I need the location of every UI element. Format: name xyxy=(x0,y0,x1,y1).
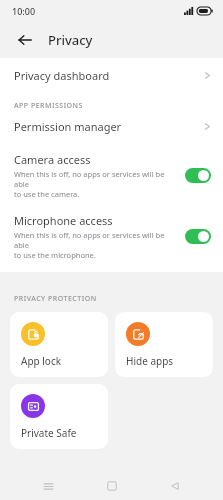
staticText: Hide apps xyxy=(126,354,174,368)
staticText: PRIVACY PROTECTION xyxy=(14,294,97,304)
button[interactable]: Show password xyxy=(0,487,223,500)
staticText: When this is off, no apps or services wi… xyxy=(14,169,179,199)
staticText: Permission manager xyxy=(14,119,204,134)
staticText: Privacy dashboard xyxy=(14,68,204,83)
button[interactable]: Recent apps xyxy=(33,472,63,500)
button[interactable]: Toggle xyxy=(185,229,211,244)
button[interactable]: Camera access xyxy=(0,144,223,205)
staticText: Privacy xyxy=(48,31,93,49)
button[interactable]: Permission manager xyxy=(0,113,223,144)
button[interactable]: Private Safe xyxy=(10,384,108,449)
staticText: Camera access xyxy=(14,152,91,167)
staticText: APP PERMISSIONS xyxy=(14,101,83,111)
staticText: When this is off, no apps or services wi… xyxy=(14,230,179,260)
button[interactable]: Privacy dashboard xyxy=(0,58,223,93)
staticText: App lock xyxy=(21,354,62,368)
staticText: Private Safe xyxy=(21,426,77,440)
button[interactable]: Home xyxy=(97,472,127,500)
button[interactable]: Microphone access xyxy=(0,205,223,266)
button[interactable]: Toggle xyxy=(185,168,211,183)
staticText: Microphone access xyxy=(14,213,113,228)
button[interactable]: Back xyxy=(160,472,190,500)
button[interactable]: Hide apps xyxy=(115,312,213,377)
button[interactable]: Back xyxy=(12,27,38,53)
button[interactable]: App lock xyxy=(10,312,108,377)
staticText: 10:00 xyxy=(12,5,36,17)
